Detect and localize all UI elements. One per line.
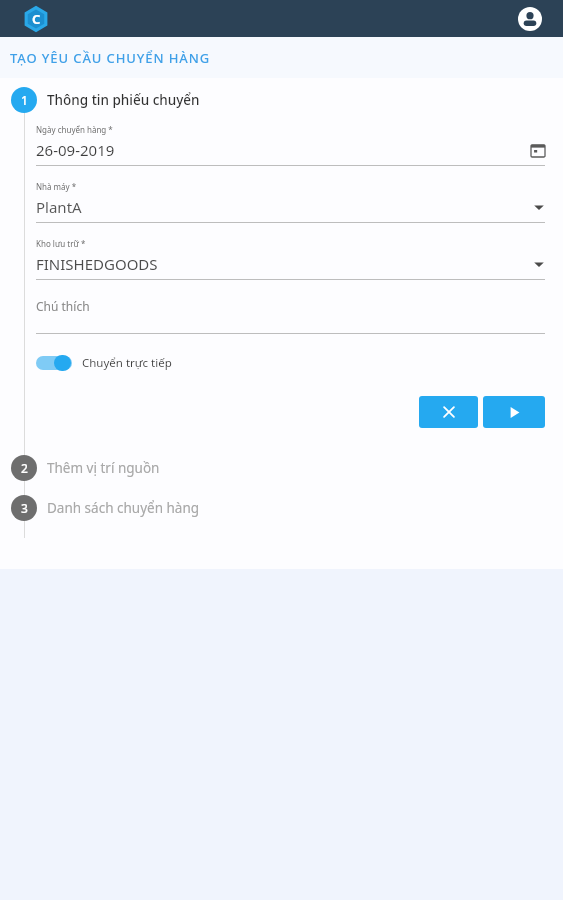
staticText: FINISHEDGOODS xyxy=(36,254,533,274)
other: Open dropdown xyxy=(533,258,545,270)
staticText: C xyxy=(32,10,41,28)
button[interactable]: Nhà máy * xyxy=(36,181,545,223)
staticText: Kho lưu trữ * xyxy=(36,238,86,249)
staticText: Ngày chuyển hàng * xyxy=(36,124,113,135)
staticText: 2 xyxy=(21,460,28,476)
staticText: 26-09-2019 xyxy=(36,140,531,160)
staticText: PlantA xyxy=(36,197,533,217)
other: Pick date xyxy=(531,143,545,157)
staticText: Thông tin phiếu chuyển xyxy=(47,91,200,109)
button[interactable]: 2 xyxy=(0,455,563,481)
staticText: TẠO YÊU CẦU CHUYỂN HÀNG xyxy=(10,49,211,67)
button[interactable]: Cancel xyxy=(419,396,478,428)
staticText: Chuyển trực tiếp xyxy=(82,355,172,371)
staticText: Chú thích xyxy=(36,298,90,314)
button[interactable]: 1 xyxy=(0,87,563,113)
button[interactable]: Account xyxy=(513,2,547,36)
button[interactable]: Chú thích xyxy=(36,298,545,334)
button[interactable]: Chuyển trực tiếp xyxy=(36,355,172,371)
staticText: Danh sách chuyển hàng xyxy=(47,499,200,517)
staticText: Thêm vị trí nguồn xyxy=(47,459,160,477)
button[interactable]: App logo xyxy=(21,4,51,34)
staticText: 1 xyxy=(21,92,28,108)
other: Open dropdown xyxy=(533,201,545,213)
button[interactable]: 3 xyxy=(0,495,563,521)
button[interactable]: Next xyxy=(483,396,545,428)
staticText: Nhà máy * xyxy=(36,181,77,192)
staticText: 3 xyxy=(21,500,28,516)
button[interactable]: Ngày chuyển hàng * xyxy=(36,124,545,166)
button[interactable]: Kho lưu trữ * xyxy=(36,238,545,280)
